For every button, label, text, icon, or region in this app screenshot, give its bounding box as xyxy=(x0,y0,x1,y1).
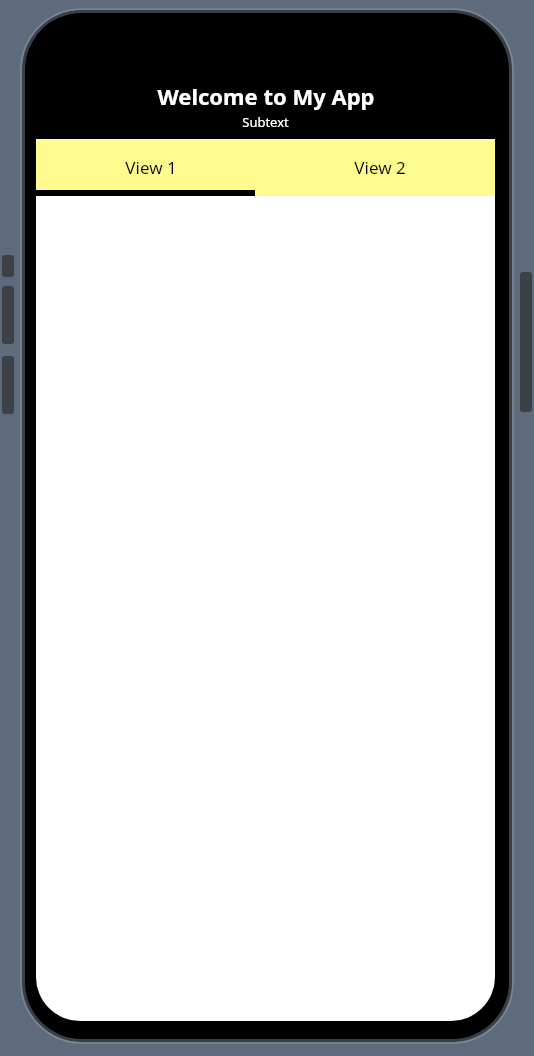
button[interactable]: View 2 xyxy=(265,139,495,196)
staticText: Welcome to My App xyxy=(157,81,375,111)
staticText: View 2 xyxy=(354,156,406,179)
staticText: Subtext xyxy=(242,113,289,131)
button[interactable] xyxy=(36,196,495,1021)
button[interactable]: View 1 xyxy=(36,139,265,196)
staticText: View 1 xyxy=(125,156,177,179)
